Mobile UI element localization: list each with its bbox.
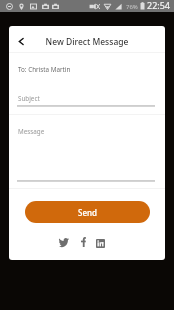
- staticText: 76%: [126, 3, 138, 11]
- staticText: Send: [78, 207, 97, 218]
- button[interactable]: Share on Facebook: [77, 236, 89, 248]
- staticText: To: Christa Martin: [18, 65, 71, 74]
- button[interactable]: Share on Twitter: [57, 236, 70, 249]
- staticText: 22:54: [147, 0, 171, 11]
- staticText: Message: [18, 127, 45, 136]
- button[interactable]: Send: [25, 201, 150, 223]
- button[interactable]: Back: [11, 32, 31, 50]
- button[interactable]: Share on LinkedIn: [94, 237, 107, 250]
- staticText: New Direct Message: [9, 36, 165, 48]
- staticText: Subject: [18, 94, 40, 103]
